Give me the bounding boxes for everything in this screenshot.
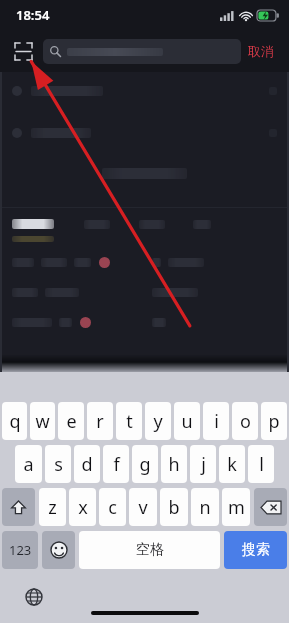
- button[interactable]: 搜索: [224, 531, 287, 569]
- staticText: m: [228, 495, 245, 520]
- button[interactable]: [193, 220, 211, 229]
- staticText: p: [268, 409, 280, 434]
- button[interactable]: [144, 316, 289, 329]
- button[interactable]: Delete: [254, 488, 287, 526]
- button[interactable]: o: [232, 402, 258, 440]
- staticText: n: [199, 495, 211, 520]
- button[interactable]: z: [39, 488, 66, 526]
- button[interactable]: x: [69, 488, 96, 526]
- button[interactable]: [139, 220, 165, 229]
- button[interactable]: n: [191, 488, 219, 526]
- button[interactable]: g: [132, 445, 158, 483]
- staticText: 空格: [136, 541, 164, 559]
- button[interactable]: Shift: [2, 488, 35, 526]
- button[interactable]: Scan code: [8, 36, 38, 66]
- button[interactable]: l: [248, 445, 274, 483]
- button[interactable]: y: [145, 402, 171, 440]
- button[interactable]: [0, 78, 289, 104]
- button[interactable]: 123: [2, 531, 38, 569]
- staticText: t: [126, 409, 133, 434]
- staticText: v: [138, 495, 148, 520]
- button[interactable]: u: [174, 402, 200, 440]
- button[interactable]: s: [45, 445, 71, 483]
- staticText: q: [9, 409, 21, 434]
- button[interactable]: f: [103, 445, 129, 483]
- button[interactable]: [0, 120, 289, 146]
- staticText: w: [35, 409, 50, 434]
- button[interactable]: [84, 220, 110, 229]
- button[interactable]: [144, 286, 289, 299]
- staticText: o: [240, 409, 251, 434]
- staticText: f: [113, 452, 120, 477]
- button[interactable]: e: [58, 402, 84, 440]
- button[interactable]: [0, 286, 144, 299]
- staticText: 123: [9, 541, 32, 559]
- button[interactable]: q: [2, 402, 27, 440]
- staticText: k: [227, 452, 237, 477]
- button[interactable]: 空格: [79, 531, 220, 569]
- button[interactable]: t: [116, 402, 142, 440]
- button[interactable]: [144, 256, 289, 269]
- staticText: z: [48, 495, 57, 520]
- button[interactable]: [12, 219, 54, 229]
- staticText: s: [54, 452, 63, 477]
- staticText: 取消: [248, 43, 274, 59]
- staticText: 18:54: [16, 6, 50, 24]
- button[interactable]: c: [99, 488, 126, 526]
- staticText: 搜索: [242, 541, 270, 559]
- button[interactable]: j: [190, 445, 216, 483]
- staticText: l: [259, 452, 264, 477]
- staticText: c: [108, 495, 117, 520]
- staticText: r: [96, 409, 104, 434]
- staticText: i: [214, 409, 219, 434]
- staticText: u: [181, 409, 193, 434]
- button[interactable]: v: [129, 488, 157, 526]
- staticText: d: [81, 452, 93, 477]
- button[interactable]: Switch language: [22, 585, 46, 609]
- button[interactable]: [0, 256, 144, 269]
- staticText: g: [139, 452, 151, 477]
- staticText: y: [153, 409, 163, 434]
- button[interactable]: [0, 316, 144, 329]
- button[interactable]: Emoji: [42, 531, 75, 569]
- staticText: j: [201, 452, 206, 477]
- staticText: h: [168, 452, 180, 477]
- button[interactable]: d: [74, 445, 100, 483]
- staticText: a: [23, 452, 34, 477]
- staticText: x: [78, 495, 88, 520]
- button[interactable]: b: [160, 488, 188, 526]
- button[interactable]: 取消: [241, 39, 281, 63]
- button[interactable]: p: [261, 402, 287, 440]
- button[interactable]: i: [203, 402, 229, 440]
- staticText: e: [66, 409, 77, 434]
- button[interactable]: r: [87, 402, 113, 440]
- button[interactable]: h: [161, 445, 187, 483]
- staticText: b: [168, 495, 180, 520]
- button[interactable]: k: [219, 445, 245, 483]
- button[interactable]: w: [30, 402, 55, 440]
- button[interactable]: m: [222, 488, 250, 526]
- button[interactable]: [43, 39, 241, 64]
- button[interactable]: a: [15, 445, 42, 483]
